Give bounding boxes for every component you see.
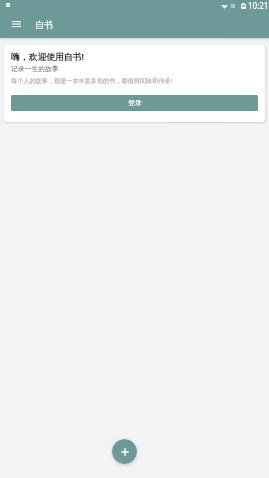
staticText: 记录一生的故事	[11, 64, 59, 73]
staticText: 自书	[35, 19, 53, 30]
staticText: 每个人的故事，都是一本丰富多彩的书，都值得回味和传承!	[11, 76, 173, 84]
button[interactable]: Open navigation menu	[2, 14, 30, 38]
button[interactable]: 登录	[11, 95, 258, 111]
staticText: 登录	[128, 98, 142, 107]
staticText: 10:21	[248, 0, 269, 11]
button[interactable]: Add new entry	[112, 439, 137, 464]
staticText: 嗨，欢迎使用自书!	[11, 51, 84, 63]
